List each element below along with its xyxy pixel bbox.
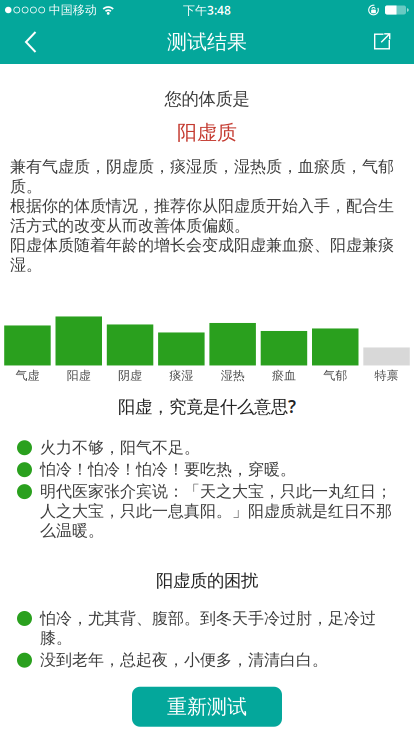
staticText: 阳虚，究竟是什么意思? <box>118 395 296 418</box>
staticText: 气郁 <box>323 368 347 383</box>
staticText: 明代医家张介宾说：「天之大宝，只此一丸红日；人之大宝，只此一息真阳。」阳虚质就是… <box>40 482 392 541</box>
staticText: 兼有气虚质，阴虚质，痰湿质，湿热质，血瘀质，气郁质。 根据你的体质情况，推荐你从… <box>10 157 394 275</box>
button[interactable]: 返回 <box>0 20 37 64</box>
staticText: 火力不够，阳气不足。 <box>40 438 200 457</box>
staticText: 阳虚质 <box>177 120 237 145</box>
staticText: 您的体质是 <box>164 88 249 110</box>
staticText: 测试结果 <box>167 30 247 54</box>
staticText: 中国移动 <box>49 3 97 17</box>
staticText: 痰湿 <box>169 368 193 383</box>
button[interactable]: 分享 <box>374 20 414 63</box>
staticText: 阳虚 <box>67 368 91 383</box>
staticText: 阴虚 <box>118 368 142 383</box>
staticText: 湿热 <box>221 368 245 383</box>
staticText: 重新测试 <box>167 694 247 719</box>
staticText: 瘀血 <box>272 368 296 383</box>
staticText: 怕冷，尤其背、腹部。到冬天手冷过肘，足冷过膝。 <box>40 608 376 648</box>
staticText: 下午3:48 <box>183 2 231 18</box>
staticText: 怕冷！怕冷！怕冷！要吃热，穿暖。 <box>40 460 296 479</box>
staticText: 没到老年，总起夜，小便多，清清白白。 <box>40 650 328 670</box>
staticText: 特禀 <box>375 368 399 383</box>
staticText: 阳虚质的困扰 <box>156 570 258 591</box>
button[interactable]: 重新测试 <box>132 687 282 727</box>
staticText: 气虚 <box>15 368 39 383</box>
